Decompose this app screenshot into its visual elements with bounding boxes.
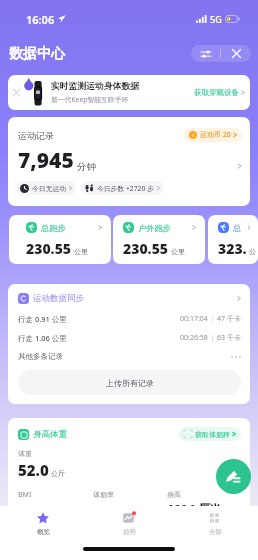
- button[interactable]: 总跑步: [9, 215, 111, 264]
- staticText: 公斤: [51, 469, 65, 478]
- staticText: 230.55: [123, 239, 169, 258]
- staticText: 身高体重: [33, 429, 67, 440]
- button[interactable]: 实时监测运动身体数据: [8, 75, 250, 110]
- staticText: 230.55: [26, 239, 72, 258]
- button[interactable]: Filter: [191, 45, 220, 62]
- staticText: 分钟: [77, 161, 96, 173]
- staticText: 166.0 厘米: [167, 501, 221, 516]
- staticText: BMI: [18, 490, 32, 500]
- button[interactable]: 运动记录: [8, 117, 250, 206]
- button[interactable]: 总行走: [208, 215, 258, 264]
- button[interactable]: 获取体脂秤: [179, 427, 241, 441]
- staticText: 概览: [37, 528, 50, 536]
- staticText: 获取穿戴设备: [194, 88, 239, 97]
- staticText: 总跑步: [41, 223, 66, 233]
- staticText: 行走 1.06 公里: [18, 333, 67, 343]
- staticText: 5G: [210, 13, 222, 25]
- button[interactable]: 概览: [0, 512, 86, 536]
- staticText: 323.45: [218, 239, 249, 258]
- staticText: 今日无运动: [32, 184, 66, 193]
- staticText: 00:17:04: [180, 314, 208, 324]
- staticText: 全部: [209, 528, 222, 536]
- staticText: 47 千卡: [217, 314, 241, 324]
- staticText: 其他多条记录: [18, 352, 63, 361]
- staticText: 获取体脂秤: [195, 430, 230, 439]
- staticText: 总行走: [233, 223, 249, 233]
- staticText: 63 千卡: [217, 333, 241, 343]
- staticText: 行走 0.91 公里: [18, 314, 67, 324]
- staticText: 运动币 20: [200, 130, 231, 140]
- staticText: 52.0: [18, 460, 49, 480]
- button[interactable]: 上传所有记录: [18, 370, 241, 395]
- button[interactable]: 今日步数 +2720 步: [81, 181, 164, 195]
- staticText: 新一代Keep智能互联手环: [51, 95, 129, 104]
- staticText: 公里: [74, 247, 88, 256]
- staticText: 运动记录: [18, 130, 54, 141]
- staticText: 00:26:58: [180, 333, 208, 343]
- button[interactable]: 运动数据同步: [18, 293, 241, 304]
- staticText: 数据中心: [9, 45, 65, 63]
- button[interactable]: 运动币 20: [184, 128, 242, 142]
- staticText: 公里: [171, 247, 185, 256]
- staticText: 实时监测运动身体数据: [51, 81, 139, 92]
- staticText: 18.0: [18, 502, 41, 517]
- button[interactable]: Close: [221, 45, 251, 62]
- staticText: 趋势: [123, 528, 136, 536]
- staticText: 上传所有记录: [106, 378, 154, 388]
- staticText: 户外跑步: [138, 223, 171, 233]
- staticText: 体脂率: [93, 490, 114, 499]
- staticText: 7,945: [18, 146, 74, 175]
- button[interactable]: 户外跑步: [113, 215, 205, 264]
- button[interactable]: 今日无运动: [16, 181, 76, 195]
- staticText: 运动数据同步: [33, 293, 84, 304]
- staticText: 今日步数 +2720 步: [97, 184, 154, 193]
- button[interactable]: 全部: [172, 512, 258, 536]
- button[interactable]: 趋势: [86, 512, 172, 536]
- staticText: 16:06: [26, 12, 55, 27]
- staticText: 体重: [18, 449, 32, 458]
- staticText: 身高: [167, 490, 181, 499]
- button[interactable]: Record activity: [216, 459, 251, 494]
